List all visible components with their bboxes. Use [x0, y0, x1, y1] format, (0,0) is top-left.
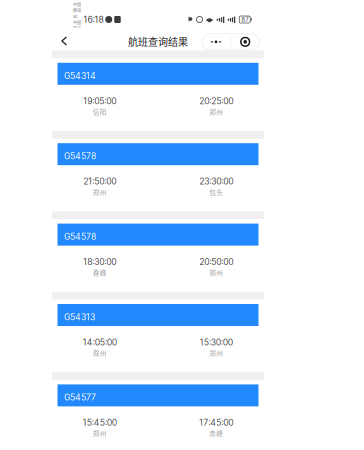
staticText: G54313 — [64, 312, 95, 322]
staticText: 郑州 — [209, 268, 223, 277]
staticText: 20:50:00 — [199, 257, 233, 267]
button[interactable]: G54313 — [52, 304, 264, 372]
staticText: 21:50:00 — [83, 176, 116, 187]
staticText: 中国移动4G — [73, 20, 81, 37]
staticText: 包头 — [209, 187, 223, 197]
staticText: 信阳 — [93, 107, 107, 116]
staticText: 15:45:00 — [83, 417, 117, 428]
button[interactable]: G54578 — [52, 143, 264, 211]
button[interactable]: Back — [52, 27, 72, 51]
staticText: G54577 — [64, 392, 96, 403]
button[interactable]: More options — [202, 34, 230, 50]
staticText: 16:18 — [83, 14, 103, 25]
staticText: 春峰 — [93, 268, 107, 277]
button[interactable]: G54314 — [52, 63, 264, 131]
staticText: 14:05:00 — [83, 337, 117, 347]
button[interactable]: G54577 — [52, 384, 264, 450]
staticText: 23:30:00 — [199, 176, 233, 187]
staticText: 18:30:00 — [83, 257, 116, 267]
staticText: 赤峰 — [209, 428, 223, 438]
staticText: 17:45:00 — [199, 417, 233, 428]
button[interactable]: Close app — [231, 34, 259, 50]
staticText: 郑州 — [209, 107, 223, 116]
staticText: 15:30:00 — [200, 337, 233, 347]
staticText: 郑州 — [93, 187, 107, 197]
staticText: G54578 — [64, 231, 96, 242]
staticText: 郑州 — [209, 348, 223, 358]
staticText: 航班查询结果 — [128, 34, 188, 49]
staticText: 19:05:00 — [83, 96, 116, 106]
staticText: 中国移动4G — [73, 2, 81, 19]
staticText: 87 — [241, 16, 248, 23]
staticText: G54314 — [64, 71, 96, 81]
staticText: 20:25:00 — [199, 96, 233, 106]
staticText: 郑州 — [93, 428, 107, 438]
button[interactable]: G54578 — [52, 224, 264, 292]
staticText: G54578 — [64, 151, 96, 161]
staticText: 滁州 — [93, 348, 107, 358]
